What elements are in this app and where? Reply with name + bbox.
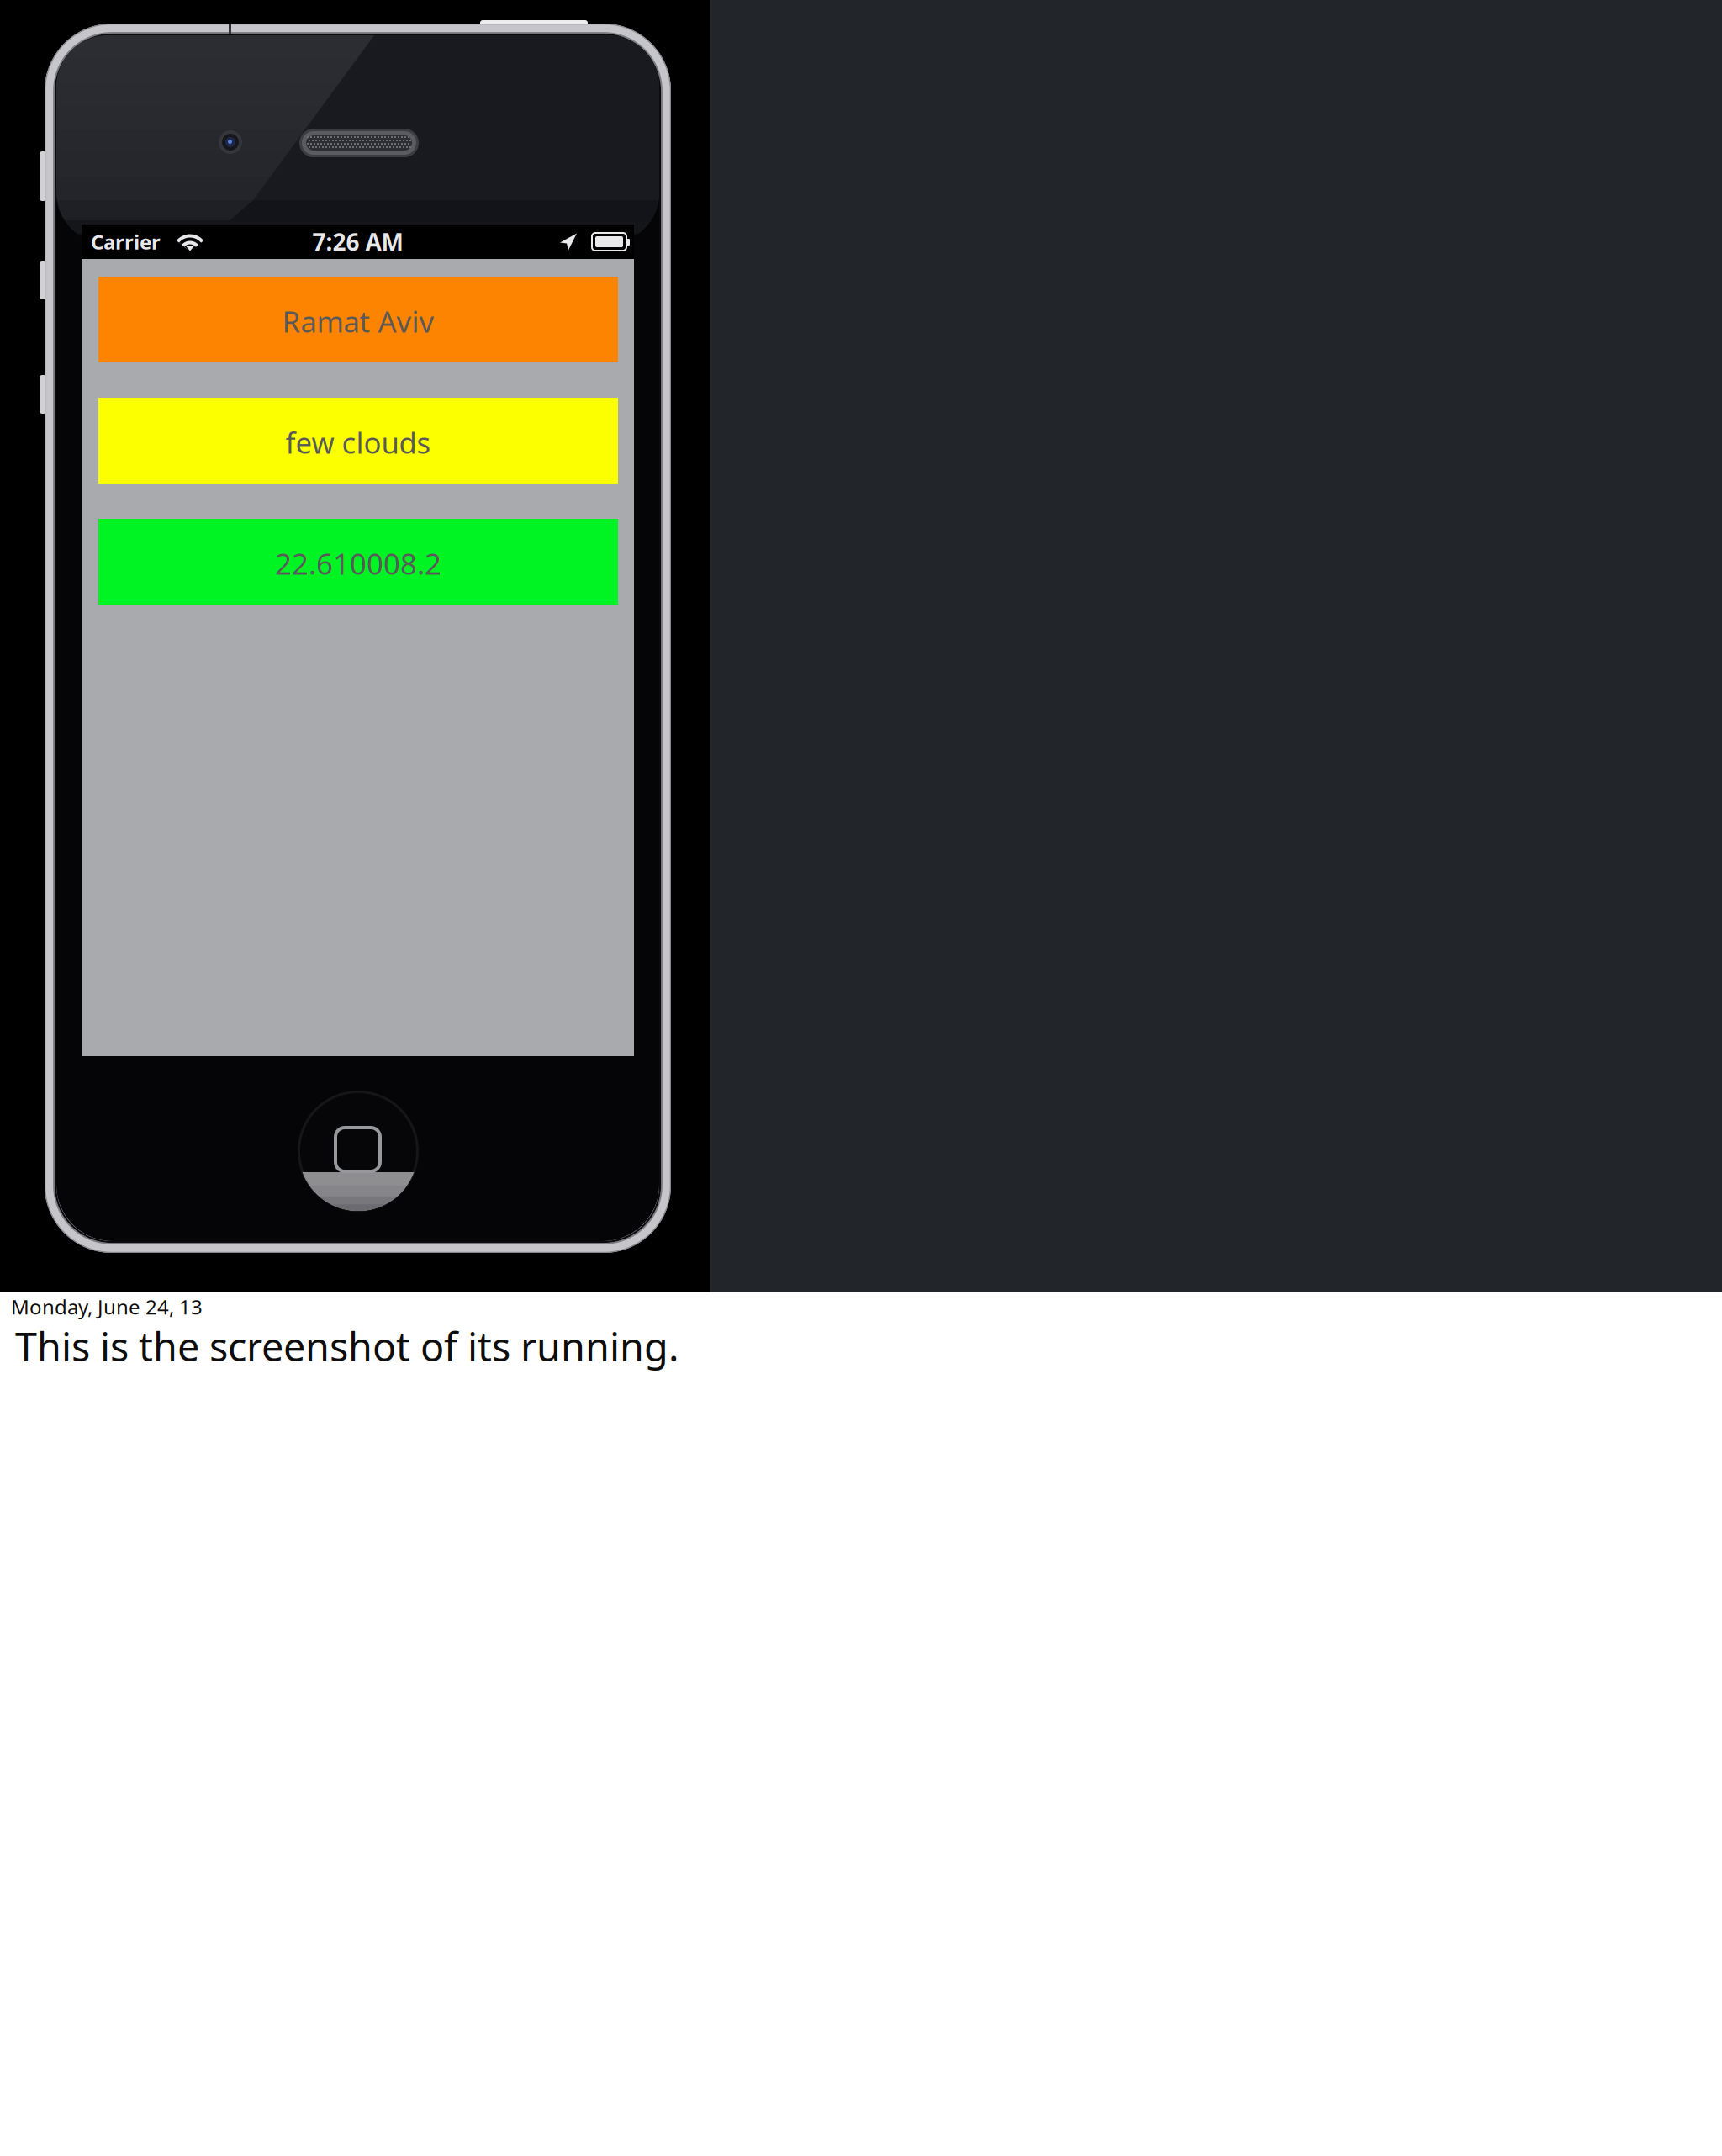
staticText: few clouds bbox=[285, 423, 431, 462]
staticText: Ramat Aviv bbox=[282, 302, 434, 341]
staticText: 7:26 AM bbox=[312, 226, 403, 257]
button[interactable]: Home bbox=[298, 1091, 419, 1212]
staticText: Monday, June 24, 13 bbox=[11, 1293, 203, 1320]
staticText: 22.610008.2 bbox=[275, 544, 441, 583]
button[interactable]: Ramat Aviv bbox=[98, 277, 618, 362]
staticText: This is the screenshot of its running. bbox=[15, 1320, 679, 1372]
staticText: Carrier bbox=[91, 228, 161, 255]
button[interactable]: few clouds bbox=[98, 398, 618, 484]
button[interactable]: 22.610008.2 bbox=[98, 519, 618, 605]
